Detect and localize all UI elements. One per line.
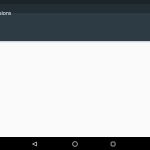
button[interactable]: [30, 139, 40, 149]
button[interactable]: sions: [0, 10, 12, 17]
button[interactable]: [107, 139, 117, 149]
button[interactable]: [70, 139, 80, 149]
